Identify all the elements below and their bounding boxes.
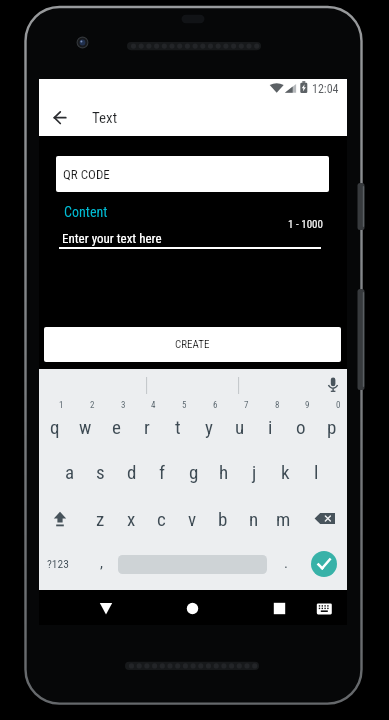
staticText: e xyxy=(112,416,121,438)
button[interactable]: l xyxy=(301,448,332,495)
button[interactable]: c xyxy=(146,495,177,542)
button[interactable]: i xyxy=(255,403,286,450)
staticText: . xyxy=(284,554,288,572)
staticText: ?123 xyxy=(47,557,69,570)
button[interactable] xyxy=(177,590,207,625)
button[interactable]: u xyxy=(224,403,255,450)
button[interactable]: v xyxy=(177,495,208,542)
button[interactable]: , xyxy=(93,542,109,584)
staticText: n xyxy=(249,508,259,530)
button[interactable]: a xyxy=(54,448,85,495)
button[interactable] xyxy=(59,227,321,251)
button[interactable] xyxy=(319,371,347,399)
button[interactable]: n xyxy=(238,495,269,542)
staticText: u xyxy=(235,416,245,438)
button[interactable] xyxy=(44,103,74,133)
button[interactable]: e xyxy=(101,403,132,450)
button[interactable]: t xyxy=(162,403,193,450)
button[interactable]: k xyxy=(270,448,301,495)
staticText: 4 xyxy=(151,400,156,410)
button[interactable]: r xyxy=(131,403,162,450)
staticText: 5 xyxy=(182,400,187,410)
staticText: p xyxy=(327,416,337,438)
staticText: c xyxy=(157,508,166,530)
staticText: k xyxy=(281,461,290,483)
staticText: y xyxy=(205,416,213,438)
button[interactable] xyxy=(264,590,294,625)
staticText: v xyxy=(188,508,197,530)
button[interactable] xyxy=(91,590,121,625)
staticText: 7 xyxy=(244,400,249,410)
button[interactable]: s xyxy=(85,448,116,495)
button[interactable]: b xyxy=(207,495,238,542)
staticText: b xyxy=(218,508,228,530)
button[interactable]: g xyxy=(178,448,209,495)
staticText: Enter your text here xyxy=(62,231,162,246)
staticText: 12:04 xyxy=(312,82,339,96)
staticText: 1 xyxy=(59,400,64,410)
staticText: m xyxy=(276,508,291,530)
staticText: 3 xyxy=(121,400,126,410)
staticText: CREATE xyxy=(175,338,210,351)
button[interactable] xyxy=(39,495,81,542)
button[interactable]: p xyxy=(316,403,347,450)
staticText: Content xyxy=(64,204,108,219)
staticText: 1 - 1000 xyxy=(288,218,323,231)
staticText: d xyxy=(127,461,137,483)
button[interactable]: h xyxy=(208,448,239,495)
button[interactable]: w xyxy=(70,403,101,450)
staticText: , xyxy=(100,554,103,572)
staticText: j xyxy=(252,461,257,483)
staticText: x xyxy=(127,508,136,530)
button[interactable]: d xyxy=(116,448,147,495)
button[interactable]: QR CODE xyxy=(56,156,329,192)
staticText: 9 xyxy=(305,400,310,410)
staticText: h xyxy=(219,461,229,483)
button[interactable] xyxy=(311,551,337,577)
staticText: g xyxy=(189,461,199,483)
button[interactable]: o xyxy=(285,403,316,450)
staticText: q xyxy=(50,416,60,438)
button[interactable]: z xyxy=(85,495,116,542)
staticText: s xyxy=(96,461,105,483)
button[interactable]: m xyxy=(268,495,299,542)
button[interactable]: j xyxy=(239,448,270,495)
button[interactable] xyxy=(309,590,339,625)
staticText: 2 xyxy=(90,400,95,410)
button[interactable]: x xyxy=(116,495,147,542)
button[interactable] xyxy=(305,495,347,542)
staticText: l xyxy=(314,461,319,483)
staticText: t xyxy=(175,416,181,438)
staticText: z xyxy=(96,508,105,530)
staticText: 0 xyxy=(336,400,341,410)
staticText: r xyxy=(144,416,150,438)
button[interactable]: CREATE xyxy=(44,327,341,362)
staticText: a xyxy=(65,461,75,483)
button[interactable]: ?123 xyxy=(39,540,77,587)
staticText: 8 xyxy=(275,400,280,410)
staticText: f xyxy=(159,461,166,483)
staticText: w xyxy=(79,416,92,438)
staticText: Text xyxy=(92,109,118,127)
button[interactable]: f xyxy=(147,448,178,495)
staticText: QR CODE xyxy=(63,167,110,182)
button[interactable]: q xyxy=(39,403,70,450)
button[interactable]: y xyxy=(193,403,224,450)
staticText: 6 xyxy=(213,400,218,410)
staticText: o xyxy=(296,416,306,438)
staticText: i xyxy=(268,416,273,438)
button[interactable]: . xyxy=(278,542,294,584)
